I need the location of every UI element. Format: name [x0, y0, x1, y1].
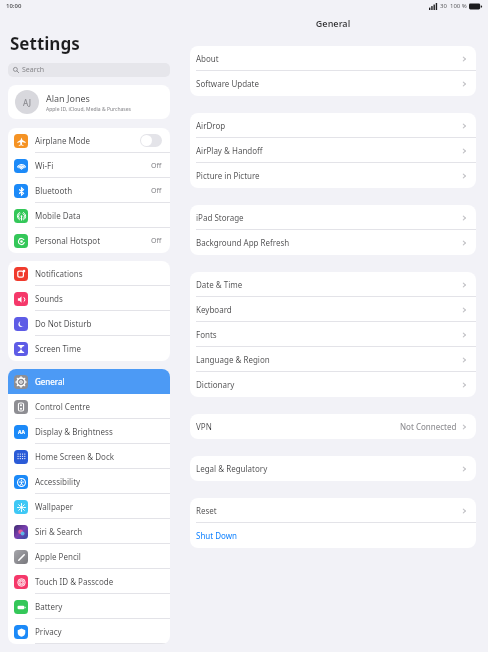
button[interactable]: Sounds	[8, 286, 170, 311]
staticText: Mobile Data	[35, 210, 162, 221]
button[interactable]: Reset	[190, 498, 476, 523]
staticText: Wi-Fi	[35, 160, 151, 171]
staticText: Accessibility	[35, 476, 162, 487]
staticText: Bluetooth	[35, 185, 151, 196]
button[interactable]: Privacy	[8, 619, 170, 644]
staticText: General	[35, 376, 162, 387]
button[interactable]: iPad Storage	[190, 205, 476, 230]
staticText: Background App Refresh	[196, 237, 461, 248]
button[interactable]: About	[190, 46, 476, 71]
button[interactable]: Mobile Data	[8, 203, 170, 228]
staticText: General	[190, 17, 476, 29]
button[interactable]: Notifications	[8, 261, 170, 286]
staticText: Fonts	[196, 329, 461, 340]
staticText: Sounds	[35, 293, 162, 304]
staticText: iPad Storage	[196, 212, 461, 223]
staticText: Do Not Disturb	[35, 318, 162, 329]
button[interactable]: Accessibility	[8, 469, 170, 494]
button[interactable]: Legal & Regulatory	[190, 456, 476, 481]
staticText: Apple ID, iCloud, Media & Purchases	[46, 106, 131, 113]
staticText: Screen Time	[35, 343, 162, 354]
staticText: Settings	[10, 32, 80, 55]
button[interactable]: Control Centre	[8, 394, 170, 419]
button[interactable]: Airplane Mode	[8, 128, 170, 153]
button[interactable]: AirDrop	[190, 113, 476, 138]
staticText: Privacy	[35, 626, 162, 637]
button[interactable]: Bluetooth	[8, 178, 170, 203]
staticText: Search	[22, 65, 45, 75]
staticText: Wallpaper	[35, 501, 162, 512]
staticText: Apple Pencil	[35, 551, 162, 562]
staticText: Software Update	[196, 78, 461, 89]
button[interactable]: Search	[8, 63, 170, 77]
staticText: Off	[151, 186, 162, 196]
staticText: AirDrop	[196, 120, 461, 131]
button[interactable]: Keyboard	[190, 297, 476, 322]
button[interactable]: AJ	[8, 85, 170, 119]
button[interactable]: Apple Pencil	[8, 544, 170, 569]
staticText: AirPlay & Handoff	[196, 145, 461, 156]
button[interactable]: Wi-Fi	[8, 153, 170, 178]
button[interactable]: Software Update	[190, 71, 476, 96]
button[interactable]: Screen Time	[8, 336, 170, 361]
staticText: Alan Jones	[46, 92, 90, 104]
button[interactable]: Shut Down	[190, 523, 476, 548]
staticText: Airplane Mode	[35, 135, 140, 146]
staticText: AJ	[23, 97, 31, 108]
staticText: Keyboard	[196, 304, 461, 315]
staticText: Display & Brightness	[35, 426, 162, 437]
staticText: 100 %	[450, 2, 467, 10]
staticText: Shut Down	[196, 530, 469, 541]
button[interactable]: Siri & Search	[8, 519, 170, 544]
button[interactable]: VPN	[190, 414, 476, 439]
button[interactable]: Fonts	[190, 322, 476, 347]
staticText: Not Connected	[400, 421, 457, 432]
staticText: 30	[440, 2, 447, 10]
staticText: Notifications	[35, 268, 162, 279]
staticText: Home Screen & Dock	[35, 451, 162, 462]
button[interactable]: Date & Time	[190, 272, 476, 297]
button[interactable]: Personal Hotspot	[8, 228, 170, 253]
staticText: Reset	[196, 505, 461, 516]
button[interactable]: AA	[8, 419, 170, 444]
staticText: AA	[18, 429, 25, 436]
staticText: Personal Hotspot	[35, 235, 151, 246]
staticText: 10:00	[6, 2, 22, 10]
button[interactable]: Touch ID & Passcode	[8, 569, 170, 594]
button[interactable]: Home Screen & Dock	[8, 444, 170, 469]
staticText: Legal & Regulatory	[196, 463, 461, 474]
staticText: VPN	[196, 421, 400, 432]
staticText: Dictionary	[196, 379, 461, 390]
button[interactable]: Language & Region	[190, 347, 476, 372]
button[interactable]: Wallpaper	[8, 494, 170, 519]
button[interactable]: AirPlay & Handoff	[190, 138, 476, 163]
staticText: Touch ID & Passcode	[35, 576, 162, 587]
button[interactable]: Background App Refresh	[190, 230, 476, 255]
staticText: Date & Time	[196, 279, 461, 290]
staticText: About	[196, 53, 461, 64]
button[interactable]: Dictionary	[190, 372, 476, 397]
button[interactable]: Battery	[8, 594, 170, 619]
button[interactable]: Picture in Picture	[190, 163, 476, 188]
staticText: Picture in Picture	[196, 170, 461, 181]
staticText: Siri & Search	[35, 526, 162, 537]
staticText: Language & Region	[196, 354, 461, 365]
staticText: Battery	[35, 601, 162, 612]
staticText: Off	[151, 236, 162, 246]
button[interactable]: General	[8, 369, 170, 394]
staticText: Off	[151, 161, 162, 171]
button[interactable]: Do Not Disturb	[8, 311, 170, 336]
staticText: Control Centre	[35, 401, 162, 412]
